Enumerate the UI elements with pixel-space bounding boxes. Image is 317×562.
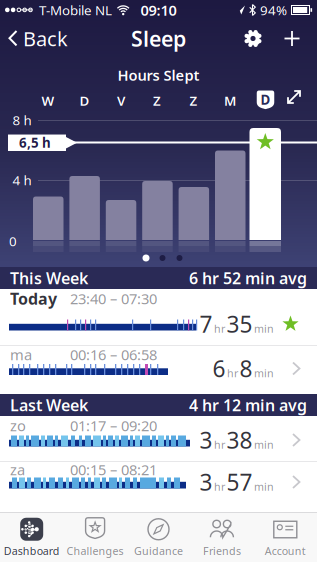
staticText: min xyxy=(254,366,274,380)
staticText: D xyxy=(79,92,89,109)
staticText: Z xyxy=(153,92,161,109)
staticText: 6,5 h xyxy=(19,134,51,151)
staticText: 8 xyxy=(239,353,252,383)
button[interactable]: Guidance xyxy=(127,513,190,562)
staticText: za xyxy=(10,460,25,479)
button[interactable]: Dashboard xyxy=(0,513,63,562)
staticText: 00:16 – 06:58 xyxy=(70,345,157,364)
staticText: D xyxy=(260,91,270,108)
staticText: hr xyxy=(214,322,225,336)
staticText: 8 h xyxy=(12,111,31,129)
staticText: 01:17 – 09:20 xyxy=(70,416,157,435)
staticText: 57 xyxy=(226,467,252,497)
button[interactable]: Account xyxy=(254,513,317,562)
staticText: 4 h xyxy=(12,171,31,189)
staticText: 94% xyxy=(260,1,287,19)
staticText: 38 xyxy=(226,425,252,455)
staticText: hr xyxy=(214,438,225,452)
staticText: Friends xyxy=(203,544,241,558)
staticText: 35 xyxy=(226,309,252,339)
staticText: 09:10 xyxy=(140,0,176,20)
staticText: Challenges xyxy=(67,544,124,558)
staticText: Guidance xyxy=(134,544,183,558)
button[interactable]: Expand chart xyxy=(285,88,303,106)
staticText: min xyxy=(254,480,274,494)
staticText: Account xyxy=(265,544,306,558)
staticText: V xyxy=(117,92,125,109)
button[interactable]: Today xyxy=(0,289,317,346)
staticText: M xyxy=(224,92,236,109)
button[interactable]: Challenges xyxy=(63,513,127,562)
button[interactable]: ma xyxy=(0,346,317,394)
staticText: W xyxy=(41,92,54,109)
button[interactable]: za xyxy=(0,462,317,512)
staticText: Last Week xyxy=(10,394,88,416)
button[interactable]: Settings xyxy=(243,28,263,48)
staticText: Today xyxy=(10,288,57,309)
staticText: 3 xyxy=(199,467,212,497)
staticText: zo xyxy=(10,416,26,435)
staticText: T-Mobile NL xyxy=(39,1,112,19)
staticText: Hours Slept xyxy=(117,65,199,85)
staticText: hr xyxy=(214,480,225,494)
staticText: Back xyxy=(23,25,68,52)
staticText: 7 xyxy=(199,309,212,339)
staticText: 23:40 – 07:30 xyxy=(70,289,157,308)
staticText: ma xyxy=(10,345,32,364)
button[interactable]: Back xyxy=(0,25,68,52)
staticText: Dashboard xyxy=(4,544,60,558)
button[interactable]: zo xyxy=(0,416,317,462)
staticText: This Week xyxy=(10,267,88,289)
staticText: 0 xyxy=(9,232,17,250)
staticText: hr xyxy=(227,366,238,380)
staticText: min xyxy=(254,438,274,452)
staticText: 00:15 – 08:21 xyxy=(70,460,157,479)
staticText: 6 hr 52 min avg xyxy=(189,267,307,289)
staticText: Z xyxy=(189,92,197,109)
button[interactable]: Add xyxy=(263,30,317,46)
staticText: 3 xyxy=(199,425,212,455)
staticText: min xyxy=(254,322,274,336)
staticText: 6 xyxy=(212,353,225,383)
button[interactable]: Friends xyxy=(190,513,254,562)
staticText: Sleep xyxy=(131,24,186,53)
staticText: 4 hr 12 min avg xyxy=(189,394,307,416)
